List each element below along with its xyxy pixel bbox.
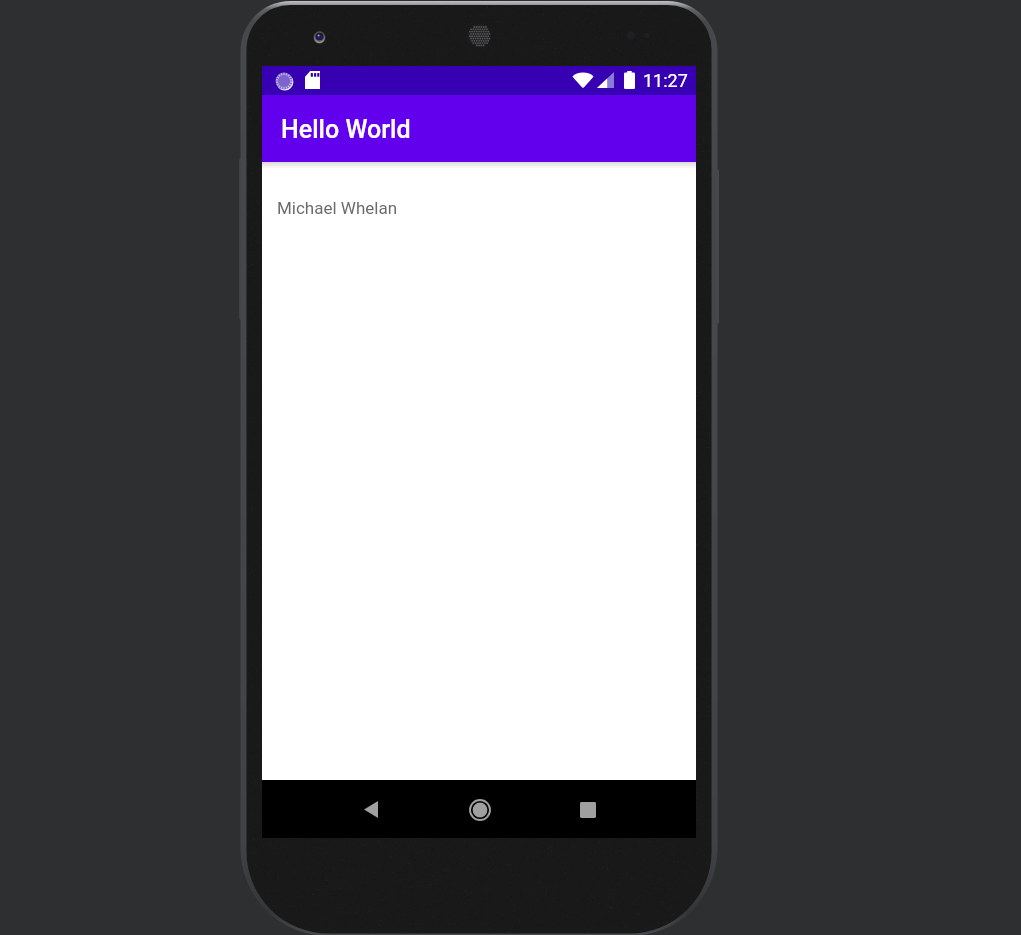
button[interactable]: Home: [461, 791, 498, 828]
staticText: 11:27: [643, 70, 688, 91]
staticText: Hello World: [281, 115, 411, 144]
staticText: Michael Whelan: [277, 198, 398, 218]
button[interactable]: Back: [352, 791, 389, 828]
button[interactable]: Recent apps: [569, 791, 606, 828]
